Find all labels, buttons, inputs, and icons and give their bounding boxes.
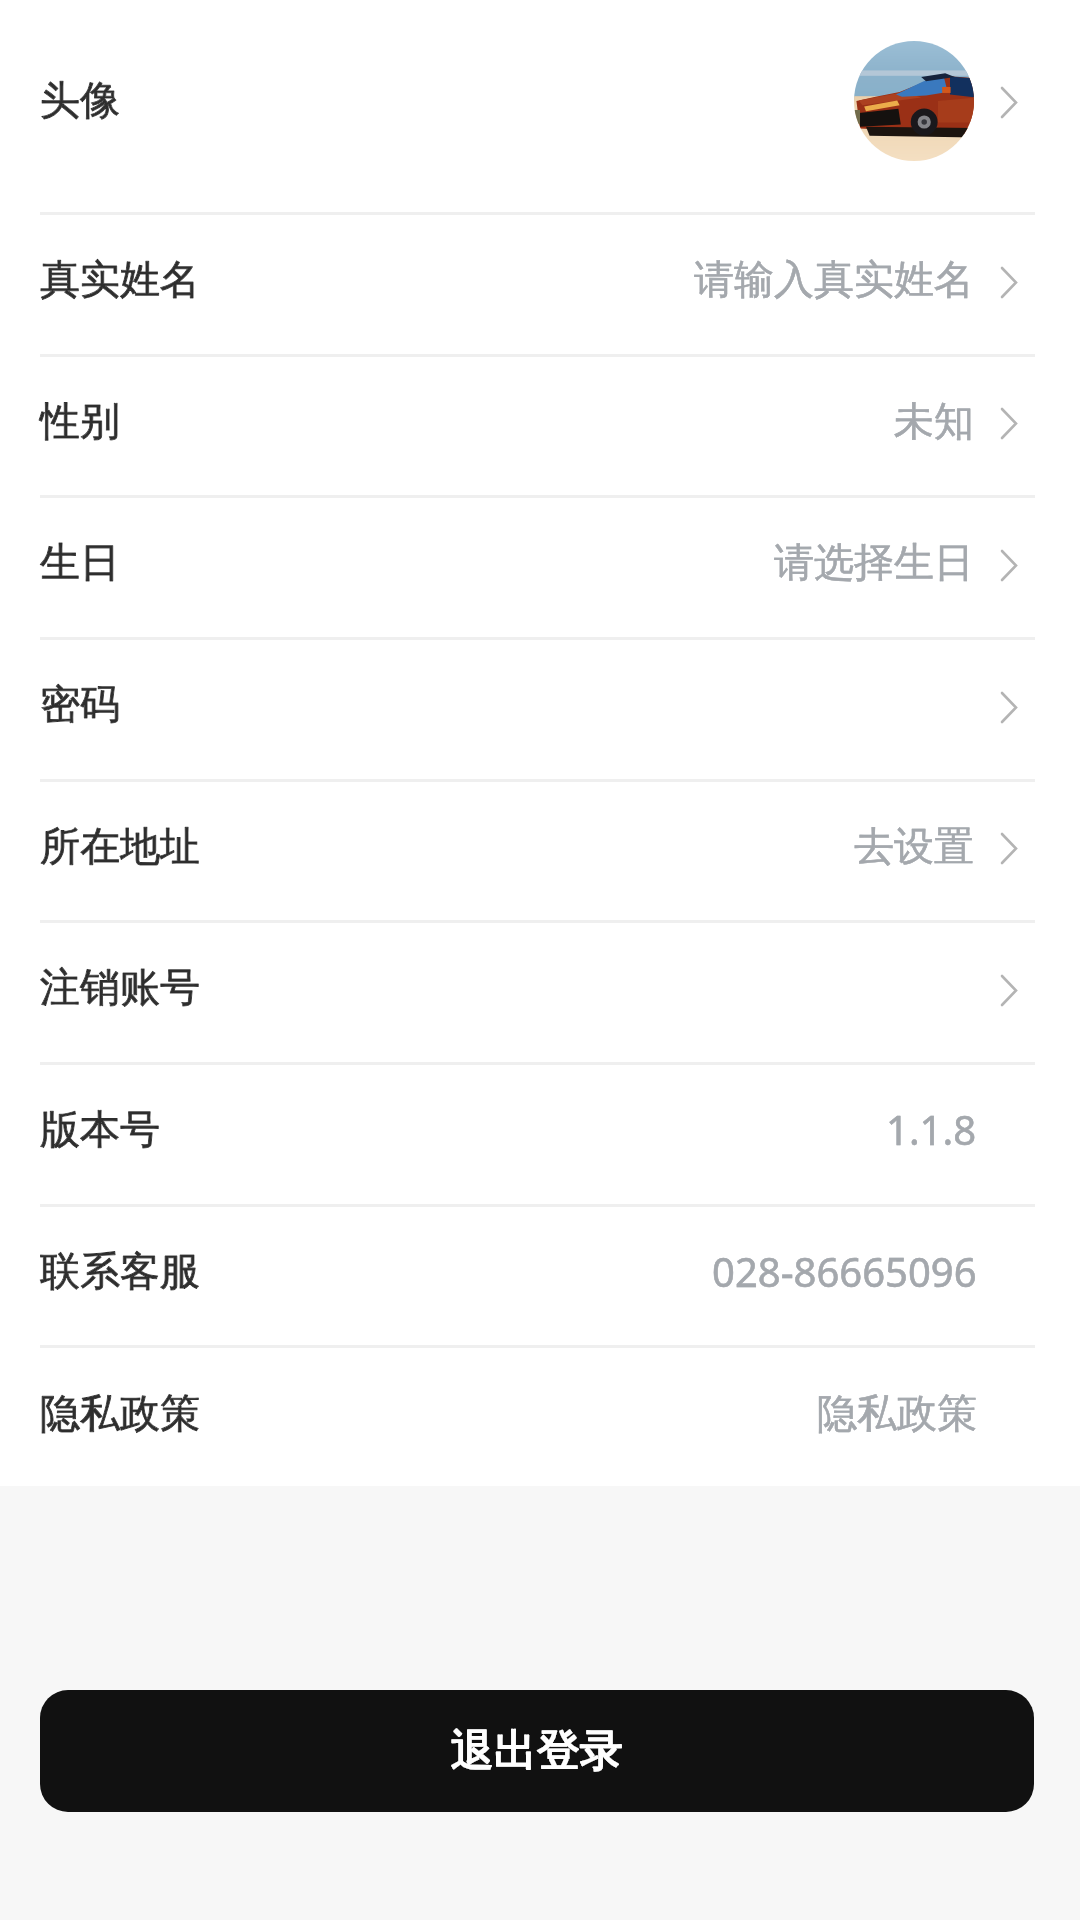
- button[interactable]: 密码: [0, 640, 1080, 782]
- button[interactable]: 头像: [0, 0, 1080, 215]
- staticText: 1.1.8: [886, 1102, 977, 1156]
- staticText: 注销账号: [40, 962, 200, 1012]
- staticText: 头像: [40, 75, 120, 125]
- staticText: 028-86665096: [712, 1244, 977, 1298]
- staticText: 联系客服: [40, 1246, 200, 1296]
- staticText: 未知: [894, 396, 974, 446]
- staticText: 真实姓名: [40, 254, 200, 304]
- staticText: 生日: [40, 537, 120, 587]
- staticText: 真实姓名: [40, 254, 200, 304]
- staticText: 028-86665096: [712, 1244, 977, 1298]
- staticText: 密码: [40, 679, 120, 729]
- staticText: 版本号: [40, 1104, 160, 1154]
- staticText: 版本号: [40, 1104, 160, 1154]
- staticText: 1.1.8: [886, 1102, 977, 1156]
- staticText: 请输入真实姓名: [694, 254, 974, 304]
- staticText: 未知: [894, 396, 974, 446]
- staticText: 退出登录: [451, 1724, 623, 1778]
- staticText: 头像: [40, 75, 120, 125]
- button[interactable]: 退出登录: [40, 1690, 1034, 1812]
- staticText: 去设置: [854, 821, 974, 871]
- button[interactable]: 性别: [0, 357, 1080, 498]
- staticText: 隐私政策: [40, 1388, 200, 1438]
- staticText: 隐私政策: [817, 1388, 977, 1438]
- staticText: 隐私政策: [40, 1388, 200, 1438]
- staticText: 请选择生日: [774, 537, 974, 587]
- staticText: 去设置: [854, 821, 974, 871]
- other: User avatar: [854, 41, 974, 161]
- staticText: 所在地址: [40, 821, 200, 871]
- staticText: 请输入真实姓名: [694, 254, 974, 304]
- staticText: 请选择生日: [774, 537, 974, 587]
- staticText: 退出登录: [451, 1724, 623, 1778]
- staticText: 注销账号: [40, 962, 200, 1012]
- button[interactable]: 真实姓名: [0, 215, 1080, 357]
- button[interactable]: 所在地址: [0, 782, 1080, 923]
- staticText: 隐私政策: [817, 1388, 977, 1438]
- staticText: 所在地址: [40, 821, 200, 871]
- staticText: 联系客服: [40, 1246, 200, 1296]
- button[interactable]: 隐私政策: [0, 1348, 1080, 1486]
- staticText: 生日: [40, 537, 120, 587]
- staticText: 性别: [40, 396, 120, 446]
- button[interactable]: 联系客服: [0, 1207, 1080, 1348]
- button[interactable]: 版本号: [0, 1065, 1080, 1207]
- button[interactable]: 生日: [0, 498, 1080, 640]
- staticText: 密码: [40, 679, 120, 729]
- staticText: 性别: [40, 396, 120, 446]
- button[interactable]: 注销账号: [0, 923, 1080, 1065]
